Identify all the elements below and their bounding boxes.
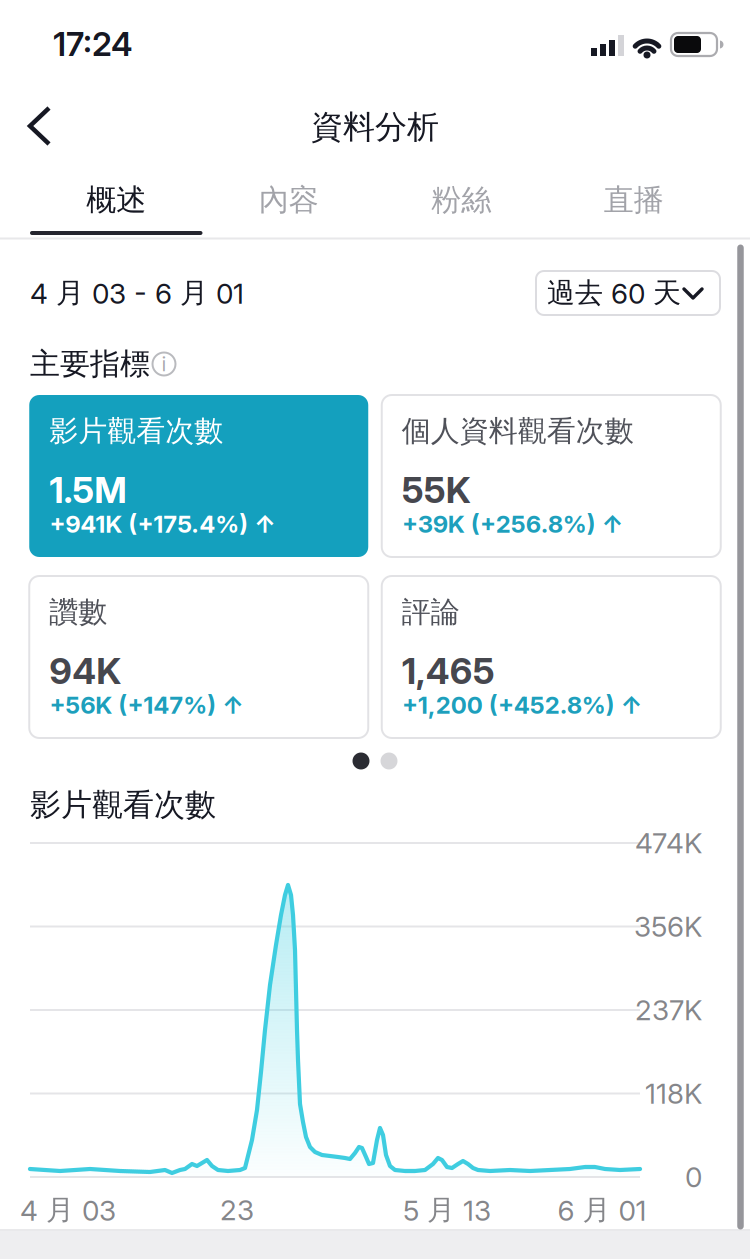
staticText: 0 bbox=[685, 1160, 702, 1194]
staticText: 94K bbox=[49, 649, 121, 693]
staticText: 6 月 01 bbox=[557, 1192, 646, 1228]
button[interactable]: 粉絲 bbox=[375, 170, 547, 236]
staticText: 5 月 13 bbox=[403, 1192, 491, 1228]
staticText: 4 月 03 bbox=[20, 1192, 116, 1228]
staticText: +39K (+256.8%) ↑ bbox=[402, 509, 624, 538]
staticText: i bbox=[161, 352, 166, 376]
button[interactable]: About key metrics bbox=[149, 349, 179, 379]
staticText: 個人資料觀看次數 bbox=[402, 413, 634, 449]
staticText: 主要指標 bbox=[30, 345, 150, 383]
staticText: 1.5M bbox=[49, 468, 127, 512]
staticText: 資料分析 bbox=[311, 107, 439, 147]
staticText: 237K bbox=[635, 993, 702, 1027]
button[interactable]: 內容 bbox=[202, 170, 375, 236]
staticText: 評論 bbox=[402, 594, 460, 630]
staticText: 過去 60 天 bbox=[547, 275, 681, 311]
staticText: 17:24 bbox=[53, 24, 133, 64]
button[interactable]: 讚數 bbox=[29, 576, 368, 738]
staticText: 影片觀看次數 bbox=[49, 413, 223, 449]
staticText: 讚數 bbox=[49, 594, 107, 630]
staticText: 4 月 03 - 6 月 01 bbox=[30, 275, 244, 311]
staticText: +56K (+147%) ↑ bbox=[49, 690, 244, 719]
staticText: 內容 bbox=[259, 181, 319, 219]
button[interactable]: 過去 60 天 bbox=[536, 271, 720, 315]
staticText: 118K bbox=[645, 1077, 702, 1110]
button[interactable]: Back bbox=[18, 102, 70, 150]
staticText: 23 bbox=[220, 1193, 254, 1227]
staticText: +941K (+175.4%) ↑ bbox=[49, 509, 276, 538]
staticText: 粉絲 bbox=[431, 181, 491, 219]
staticText: 概述 bbox=[86, 181, 146, 219]
button[interactable]: 影片觀看次數 bbox=[29, 395, 368, 557]
staticText: 直播 bbox=[604, 181, 664, 219]
staticText: +1,200 (+452.8%) ↑ bbox=[402, 690, 643, 719]
staticText: 影片觀看次數 bbox=[30, 785, 216, 825]
staticText: 55K bbox=[402, 468, 471, 512]
staticText: 474K bbox=[635, 826, 702, 860]
button[interactable]: 直播 bbox=[547, 170, 720, 236]
button[interactable]: 個人資料觀看次數 bbox=[382, 395, 721, 557]
button[interactable]: 評論 bbox=[382, 576, 721, 738]
staticText: 1,465 bbox=[402, 649, 495, 693]
button[interactable]: 概述 bbox=[30, 170, 202, 236]
staticText: 356K bbox=[634, 910, 702, 943]
